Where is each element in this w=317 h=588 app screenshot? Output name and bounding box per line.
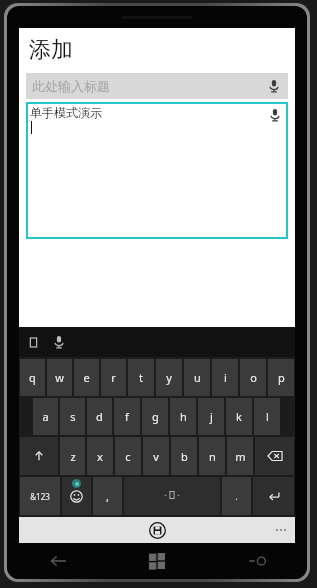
- button[interactable]: i: [212, 359, 238, 396]
- button[interactable]: e: [74, 359, 99, 396]
- staticText: j: [210, 409, 213, 424]
- button[interactable]: m: [227, 437, 253, 475]
- staticText: &123: [30, 491, 50, 502]
- button[interactable]: Space: [124, 477, 220, 515]
- button[interactable]: ,: [93, 477, 122, 515]
- staticText: a: [42, 409, 49, 424]
- button[interactable]: w: [47, 359, 72, 396]
- button[interactable]: l: [254, 398, 280, 435]
- button[interactable]: h: [170, 398, 196, 435]
- button[interactable]: o: [240, 359, 266, 396]
- button[interactable]: Clipboard: [24, 333, 42, 351]
- button[interactable]: &123: [20, 477, 60, 515]
- button[interactable]: Voice input body: [267, 107, 283, 123]
- staticText: v: [153, 449, 159, 464]
- button[interactable]: Shift: [20, 437, 58, 475]
- staticText: m: [235, 449, 246, 464]
- button[interactable]: Emoji: [62, 477, 91, 515]
- staticText: o: [250, 370, 257, 385]
- button[interactable]: k: [226, 398, 252, 435]
- button[interactable]: n: [199, 437, 225, 475]
- staticText: 此处输入标题: [32, 78, 266, 94]
- button[interactable]: 单手模式演示: [26, 102, 288, 239]
- staticText: g: [152, 409, 159, 424]
- button[interactable]: p: [268, 359, 294, 396]
- button[interactable]: q: [20, 359, 45, 396]
- button[interactable]: r: [101, 359, 126, 396]
- staticText: r: [111, 370, 116, 385]
- button[interactable]: Backspace: [255, 437, 294, 475]
- staticText: 添加: [29, 36, 73, 64]
- button[interactable]: f: [114, 398, 140, 435]
- staticText: s: [70, 409, 76, 424]
- staticText: 单手模式演示: [30, 105, 102, 120]
- button[interactable]: .: [222, 477, 251, 515]
- staticText: z: [70, 449, 76, 464]
- button[interactable]: Voice typing: [50, 333, 68, 351]
- button[interactable]: c: [115, 437, 141, 475]
- button[interactable]: a: [33, 398, 58, 435]
- staticText: x: [97, 449, 103, 464]
- button[interactable]: j: [198, 398, 224, 435]
- button[interactable]: g: [142, 398, 168, 435]
- staticText: u: [194, 370, 201, 385]
- staticText: f: [125, 409, 129, 424]
- staticText: k: [236, 409, 242, 424]
- staticText: i: [224, 370, 227, 385]
- button[interactable]: Search: [207, 543, 307, 579]
- button[interactable]: u: [184, 359, 210, 396]
- staticText: n: [209, 449, 216, 464]
- button[interactable]: s: [60, 398, 85, 435]
- button[interactable]: Voice input title: [266, 78, 282, 94]
- staticText: d: [96, 409, 103, 424]
- button[interactable]: Enter: [253, 477, 294, 515]
- button[interactable]: Back: [7, 543, 107, 579]
- button[interactable]: More options: [275, 529, 287, 531]
- staticText: y: [166, 370, 172, 385]
- button[interactable]: 此处输入标题: [26, 73, 288, 99]
- staticText: .: [235, 491, 238, 502]
- staticText: ,: [106, 489, 109, 504]
- staticText: w: [55, 370, 64, 385]
- staticText: p: [278, 370, 285, 385]
- button[interactable]: Save: [146, 519, 168, 541]
- button[interactable]: x: [87, 437, 113, 475]
- button[interactable]: z: [60, 437, 85, 475]
- button[interactable]: b: [171, 437, 197, 475]
- staticText: t: [139, 370, 143, 385]
- staticText: h: [180, 409, 187, 424]
- button[interactable]: Start: [107, 543, 207, 579]
- button[interactable]: v: [143, 437, 169, 475]
- button[interactable]: d: [87, 398, 112, 435]
- staticText: b: [181, 449, 188, 464]
- staticText: e: [83, 370, 90, 385]
- staticText: l: [266, 409, 269, 424]
- button[interactable]: y: [156, 359, 182, 396]
- staticText: c: [125, 449, 131, 464]
- button[interactable]: t: [128, 359, 154, 396]
- staticText: q: [29, 370, 36, 385]
